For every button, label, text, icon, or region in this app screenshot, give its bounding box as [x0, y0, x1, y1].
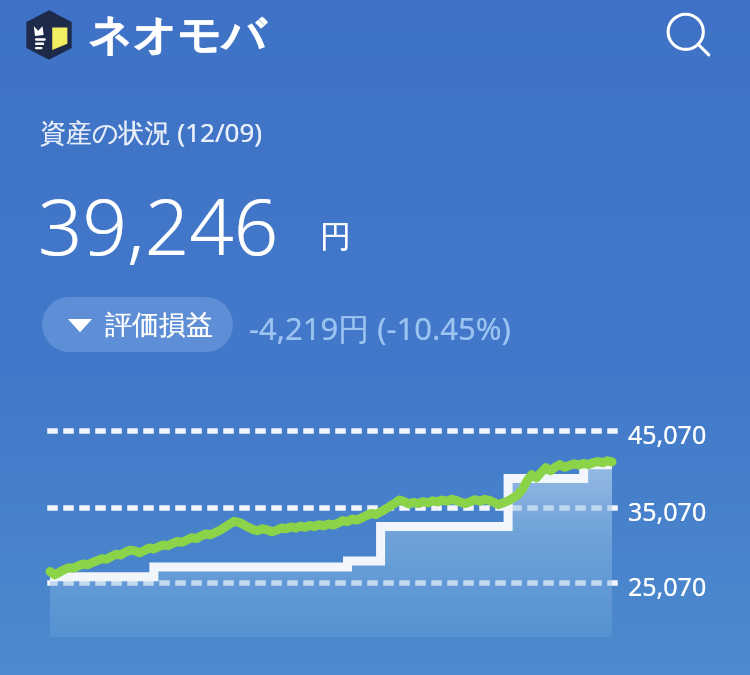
staticText: 評価損益	[105, 308, 213, 342]
staticText: -4,219円 (-10.45%)	[249, 307, 511, 349]
staticText: 35,070	[628, 494, 707, 528]
button[interactable]: 評価損益	[42, 297, 233, 352]
staticText: 25,070	[628, 569, 707, 603]
staticText: 円	[320, 217, 351, 256]
staticText: 45,070	[628, 417, 707, 451]
button[interactable]: Search	[655, 3, 719, 67]
staticText: ネオモバ	[88, 9, 267, 63]
button[interactable]: App logo	[22, 8, 76, 62]
staticText: 39,246	[38, 172, 279, 278]
staticText: 資産の状況 (12/09)	[40, 114, 263, 150]
